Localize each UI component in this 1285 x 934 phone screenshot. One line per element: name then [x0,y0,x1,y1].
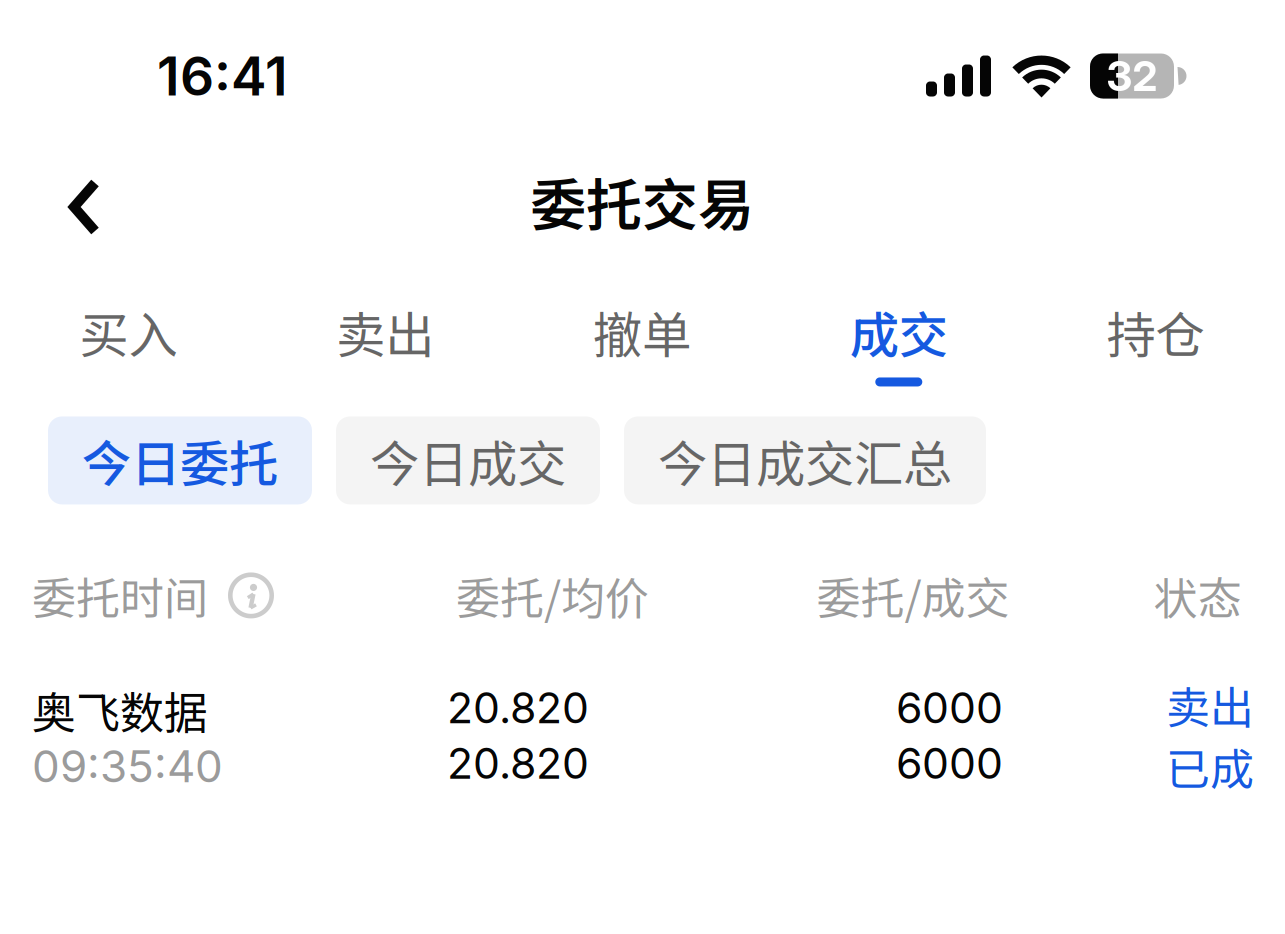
button[interactable]: 卖出 [257,262,514,394]
button[interactable]: 今日委托 [48,416,312,504]
staticText: 6000 [896,737,1003,789]
staticText: 委托/成交 [816,564,1009,627]
staticText: 买入 [79,296,177,367]
staticText: 持仓 [1107,296,1205,367]
staticText: 已成 [1166,734,1254,798]
button[interactable]: Back [0,158,134,256]
staticText: 今日委托 [82,425,278,496]
staticText: 今日成交 [370,425,566,496]
button[interactable]: 今日成交汇总 [624,416,986,504]
button[interactable]: 成交 [770,262,1027,394]
button[interactable]: 奥飞数据 [0,670,1284,800]
staticText: 卖出 [336,296,434,367]
staticText: 卖出 [1166,673,1254,736]
staticText: 16:41 [157,44,288,108]
staticText: 32 [1106,51,1157,101]
button[interactable]: 买入 [0,262,257,394]
staticText: 09:35:40 [32,740,223,793]
staticText: 撤单 [593,296,691,367]
staticText: 奥飞数据 [32,678,208,742]
staticText: 状态 [1153,564,1241,627]
staticText: 20.820 [447,737,589,789]
button[interactable]: 今日成交 [336,416,600,504]
staticText: 委托/均价 [456,564,649,627]
staticText: 委托交易 [530,160,754,242]
staticText: 委托时间 [32,564,208,627]
staticText: 20.820 [447,682,589,733]
staticText: 成交 [850,296,948,367]
staticText: 今日成交汇总 [658,425,952,496]
button[interactable]: 持仓 [1027,262,1284,394]
button[interactable]: 撤单 [514,262,770,394]
staticText: 6000 [896,682,1003,733]
